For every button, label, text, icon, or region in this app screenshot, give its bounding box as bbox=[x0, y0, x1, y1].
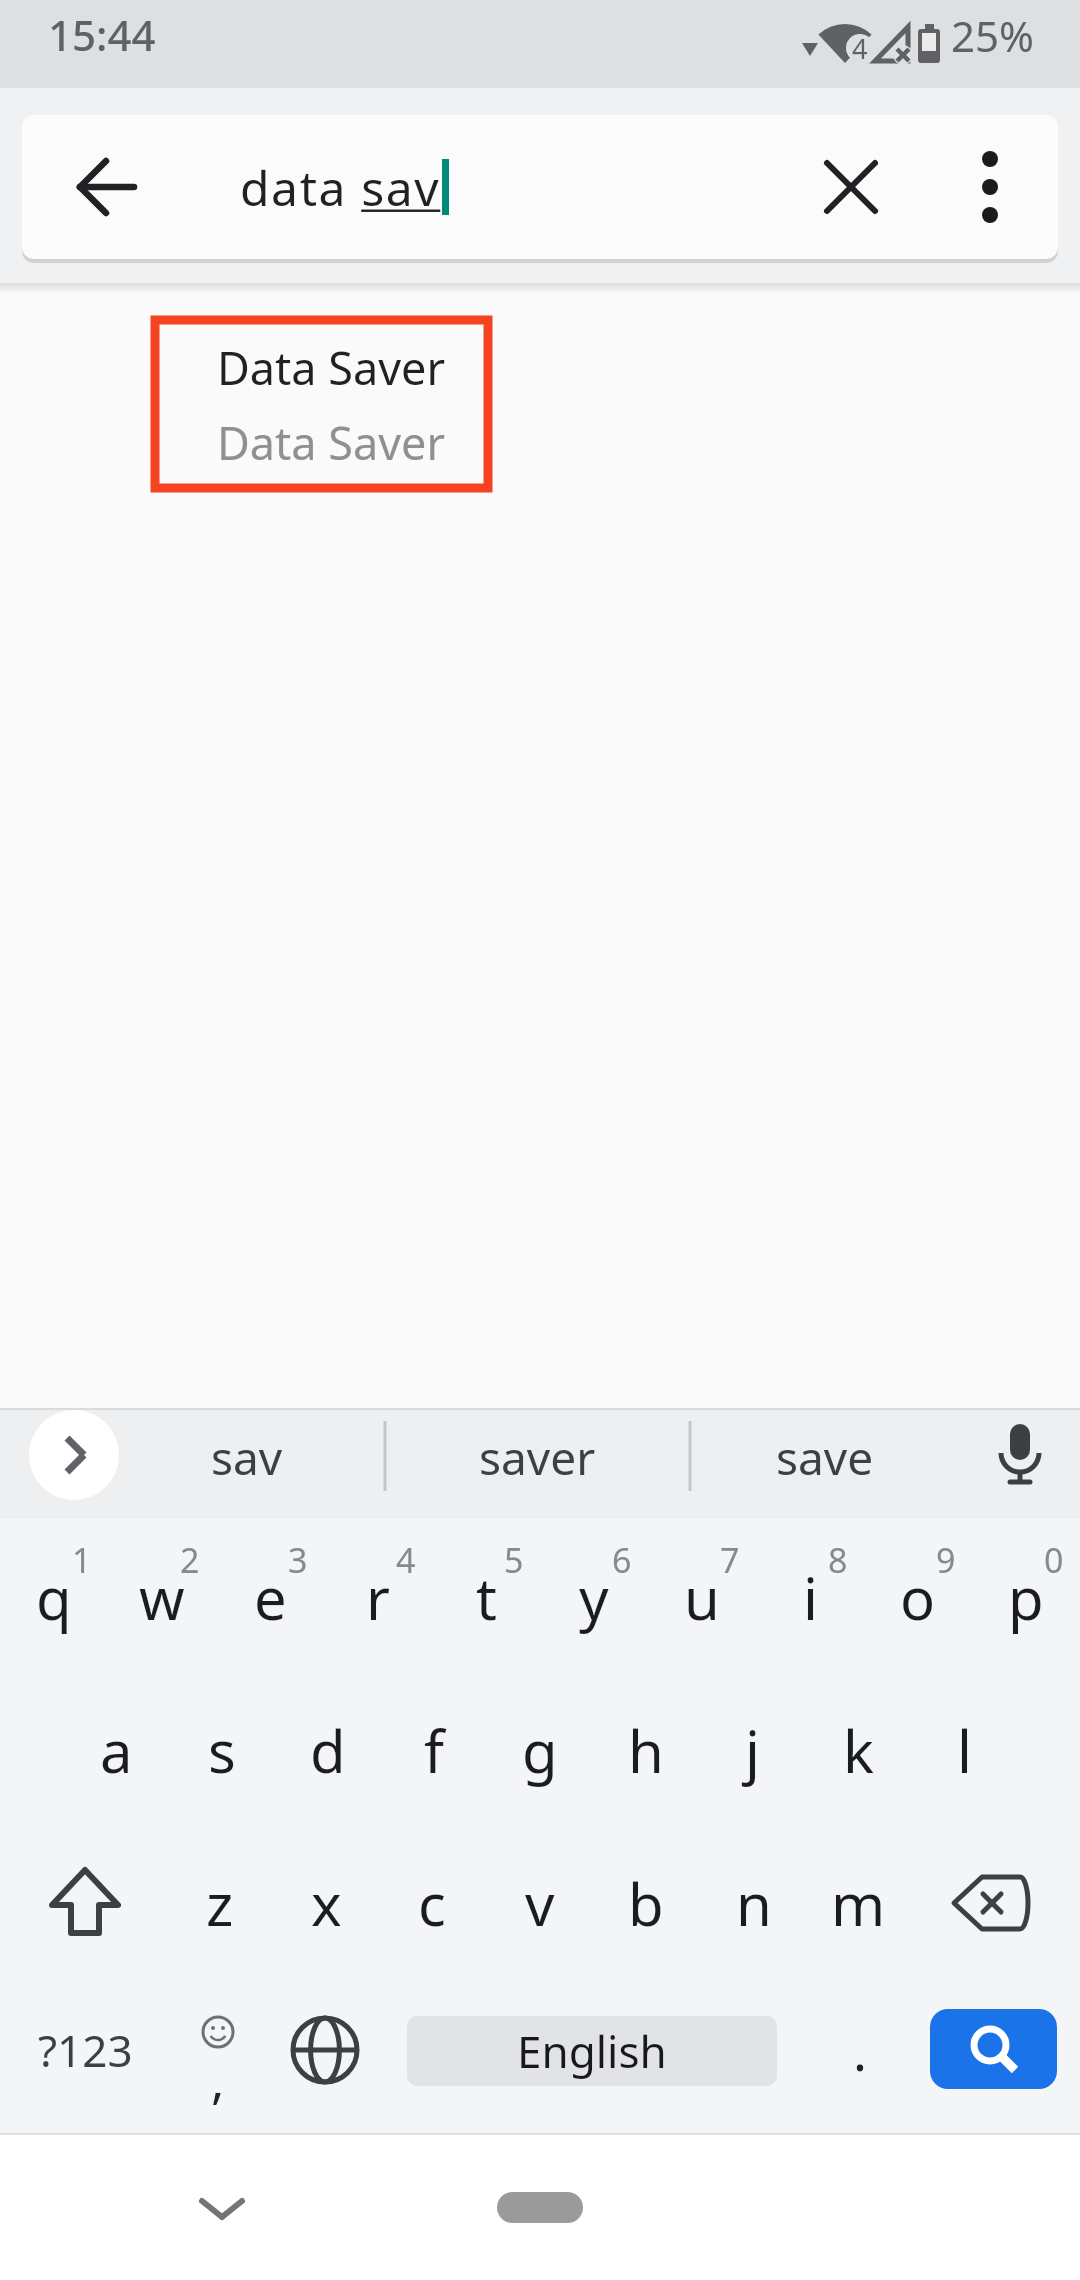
staticText: k bbox=[843, 1711, 874, 1790]
staticText: u bbox=[684, 1558, 720, 1637]
staticText: q bbox=[36, 1558, 72, 1637]
staticText: 0 bbox=[1044, 1537, 1064, 1583]
staticText: 9 bbox=[936, 1537, 956, 1583]
button[interactable]: saver bbox=[407, 1402, 667, 1512]
button[interactable] bbox=[497, 2192, 583, 2223]
staticText: j bbox=[745, 1711, 760, 1790]
button[interactable] bbox=[20, 1838, 150, 1968]
staticText: z bbox=[206, 1864, 234, 1943]
button[interactable]: m bbox=[805, 1838, 911, 1968]
button[interactable]: e bbox=[216, 1533, 324, 1675]
button[interactable]: r bbox=[324, 1533, 432, 1675]
button[interactable]: y bbox=[540, 1533, 648, 1675]
button[interactable]: i bbox=[756, 1533, 864, 1675]
button[interactable]: l bbox=[911, 1685, 1017, 1815]
button[interactable]: c bbox=[379, 1838, 485, 1968]
staticText: English bbox=[517, 2021, 667, 2081]
staticText: 15:44 bbox=[48, 6, 156, 63]
staticText: , bbox=[211, 2046, 225, 2114]
staticText: g bbox=[522, 1711, 558, 1790]
staticText: o bbox=[900, 1558, 936, 1637]
button[interactable]: x bbox=[273, 1838, 379, 1968]
staticText: data sav bbox=[240, 155, 441, 220]
staticText: w bbox=[139, 1558, 185, 1637]
button[interactable]: u bbox=[648, 1533, 756, 1675]
staticText: h bbox=[628, 1711, 664, 1790]
staticText: v bbox=[525, 1864, 555, 1943]
staticText: r bbox=[366, 1558, 390, 1637]
button[interactable]: t bbox=[432, 1533, 540, 1675]
staticText: i bbox=[803, 1558, 818, 1637]
staticText: l bbox=[957, 1711, 972, 1790]
button[interactable]: sav bbox=[117, 1402, 377, 1512]
button[interactable] bbox=[960, 157, 1020, 217]
button[interactable]: d bbox=[275, 1685, 381, 1815]
button[interactable]: , bbox=[158, 1990, 278, 2120]
button[interactable]: Data Saver bbox=[151, 316, 492, 492]
staticText: s bbox=[208, 1711, 236, 1790]
staticText: y bbox=[579, 1558, 609, 1637]
staticText: m bbox=[831, 1864, 886, 1943]
button[interactable]: z bbox=[167, 1838, 273, 1968]
button[interactable]: English bbox=[407, 2016, 777, 2086]
button[interactable] bbox=[930, 2009, 1057, 2089]
staticText: 4 bbox=[396, 1537, 416, 1583]
staticText: sav bbox=[211, 1426, 283, 1489]
button[interactable]: o bbox=[864, 1533, 972, 1675]
button[interactable]: g bbox=[487, 1685, 593, 1815]
staticText: c bbox=[418, 1864, 446, 1943]
button[interactable]: v bbox=[487, 1838, 593, 1968]
staticText: 25% bbox=[951, 7, 1034, 64]
staticText: ?123 bbox=[38, 2020, 133, 2080]
button[interactable]: . bbox=[815, 1990, 905, 2110]
staticText: n bbox=[736, 1864, 772, 1943]
button[interactable] bbox=[925, 1838, 1055, 1968]
button[interactable]: k bbox=[805, 1685, 911, 1815]
staticText: b bbox=[628, 1864, 664, 1943]
button[interactable]: p bbox=[972, 1533, 1080, 1675]
staticText: saver bbox=[479, 1426, 596, 1489]
button[interactable]: save bbox=[695, 1402, 955, 1512]
staticText: 3 bbox=[288, 1537, 308, 1583]
button[interactable]: w bbox=[108, 1533, 216, 1675]
button[interactable]: h bbox=[593, 1685, 699, 1815]
button[interactable] bbox=[821, 157, 881, 217]
button[interactable]: s bbox=[169, 1685, 275, 1815]
staticText: 2 bbox=[180, 1537, 200, 1583]
staticText: . bbox=[853, 2015, 867, 2086]
staticText: Data Saver bbox=[217, 412, 446, 473]
button[interactable]: ?123 bbox=[10, 1990, 160, 2110]
button[interactable] bbox=[975, 1413, 1065, 1498]
staticText: f bbox=[424, 1711, 444, 1790]
staticText: t bbox=[476, 1558, 497, 1637]
button[interactable] bbox=[182, 2167, 262, 2247]
staticText: 7 bbox=[720, 1537, 740, 1583]
staticText: Data Saver bbox=[217, 337, 446, 398]
staticText: save bbox=[776, 1426, 874, 1489]
button[interactable]: a bbox=[63, 1685, 169, 1815]
staticText: 8 bbox=[828, 1537, 848, 1583]
staticText: x bbox=[311, 1864, 342, 1943]
staticText: 1 bbox=[72, 1537, 92, 1583]
button[interactable]: j bbox=[699, 1685, 805, 1815]
staticText: d bbox=[310, 1711, 346, 1790]
button[interactable] bbox=[57, 157, 157, 217]
button[interactable]: q bbox=[0, 1533, 108, 1675]
staticText: 4 bbox=[852, 30, 868, 67]
staticText: e bbox=[254, 1558, 287, 1637]
button[interactable]: n bbox=[701, 1838, 807, 1968]
staticText: a bbox=[100, 1711, 133, 1790]
staticText: p bbox=[1008, 1558, 1044, 1637]
button[interactable] bbox=[270, 1995, 380, 2105]
staticText: 5 bbox=[504, 1537, 524, 1583]
button[interactable] bbox=[29, 1410, 119, 1500]
button[interactable]: b bbox=[593, 1838, 699, 1968]
button[interactable]: f bbox=[381, 1685, 487, 1815]
staticText: 6 bbox=[612, 1537, 632, 1583]
